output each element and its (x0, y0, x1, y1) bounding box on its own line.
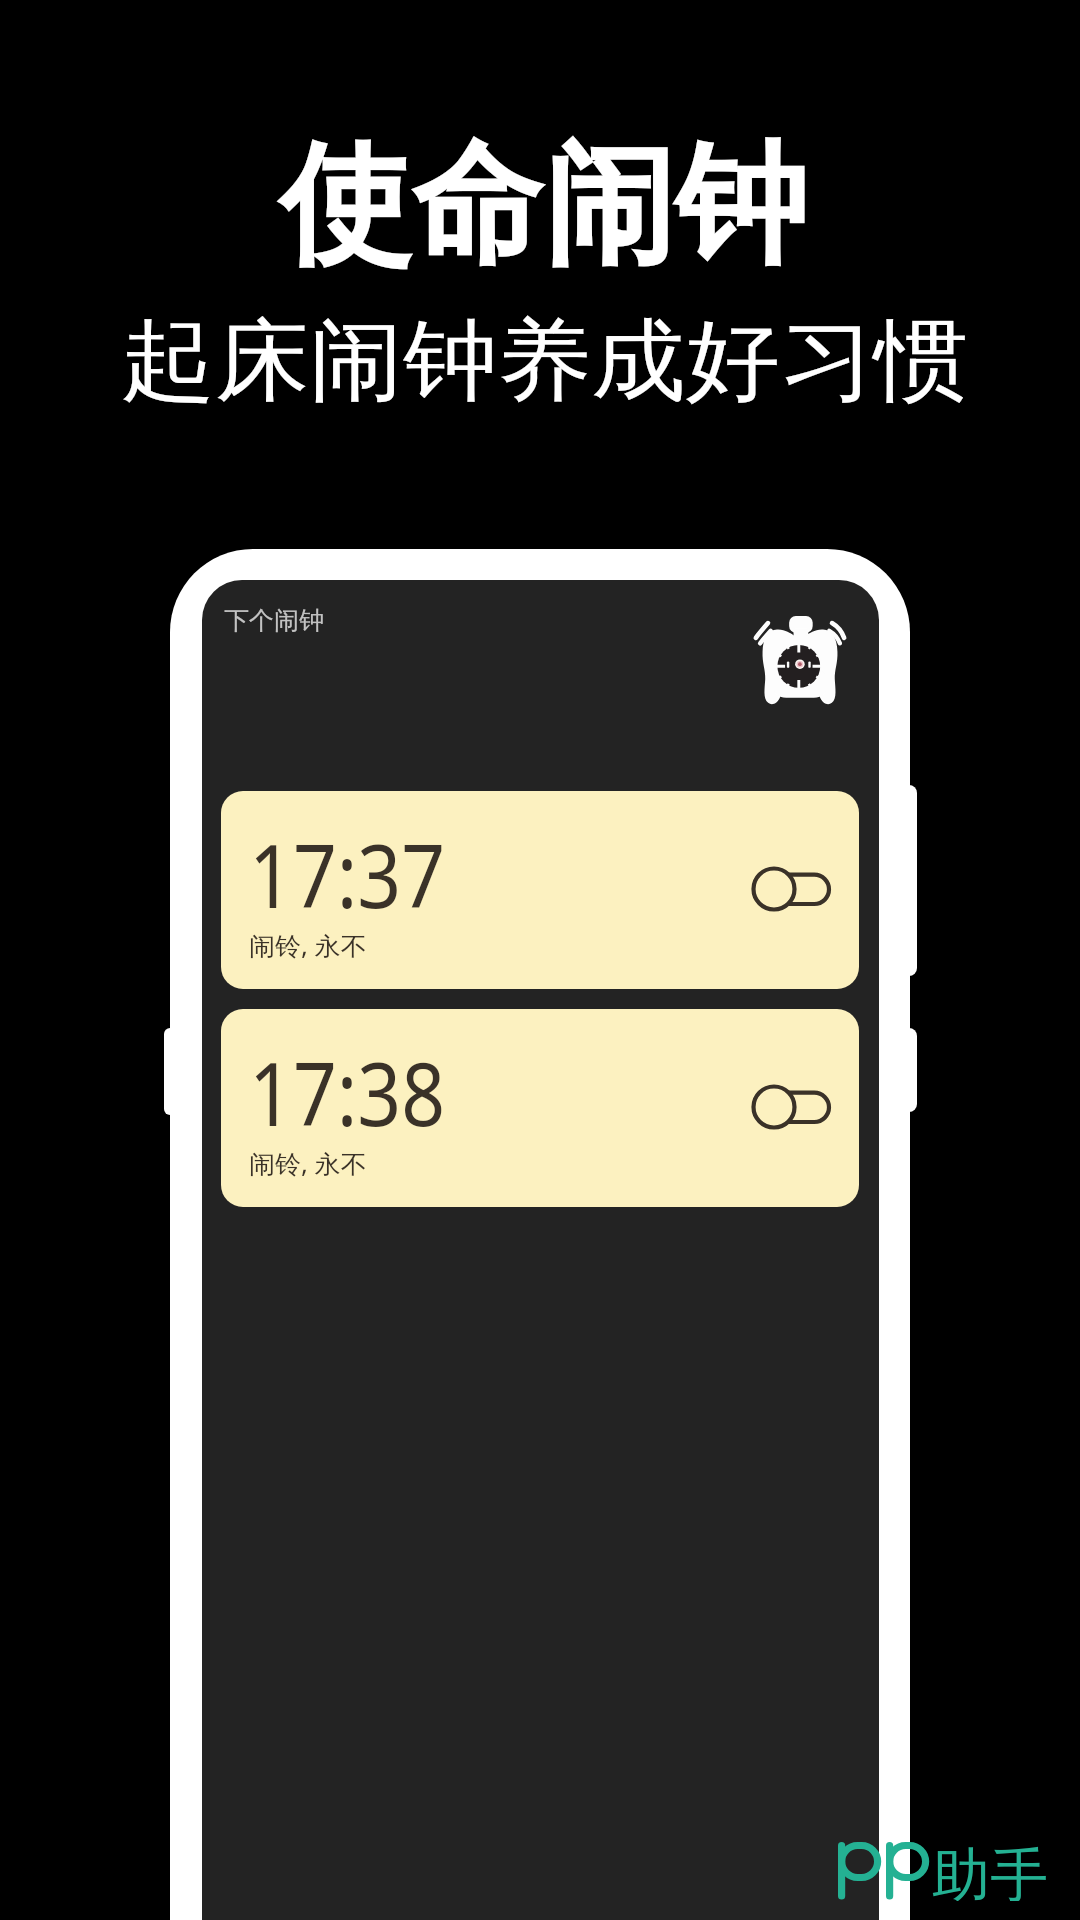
button[interactable]: 17:37 (221, 791, 859, 989)
staticText: 17:37 (249, 814, 445, 934)
button[interactable]: Alarm (754, 615, 846, 707)
staticText: 助手 (932, 1839, 1048, 1901)
staticText: 闹铃, 永不 (249, 1146, 368, 1180)
button[interactable]: Toggle alarm (746, 851, 836, 931)
staticText: 起床闹钟养成好习惯 (121, 305, 968, 417)
button[interactable]: Toggle alarm (746, 1069, 836, 1149)
button[interactable]: 17:38 (221, 1009, 859, 1207)
staticText: 使命闹钟 (279, 123, 807, 289)
staticText: 17:38 (249, 1032, 445, 1152)
staticText: 闹铃, 永不 (249, 928, 368, 962)
staticText: 下个闹钟 (224, 605, 324, 636)
